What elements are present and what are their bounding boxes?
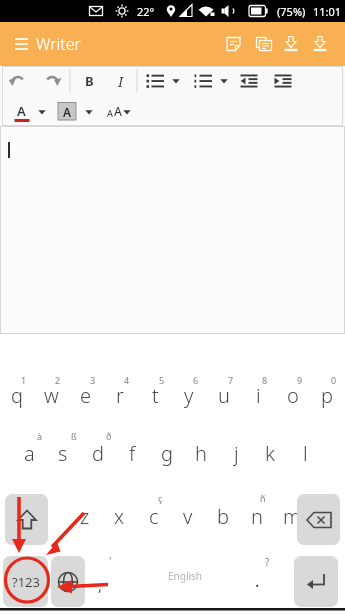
staticText: 11:01 [313, 4, 342, 19]
staticText: l [303, 440, 308, 467]
staticText: k [265, 440, 275, 467]
staticText: A [63, 104, 72, 120]
button[interactable]: q [0, 375, 34, 415]
staticText: t [152, 382, 159, 409]
staticText: A [107, 107, 113, 119]
button[interactable]: b [206, 496, 240, 536]
button[interactable] [269, 68, 297, 94]
staticText: à [37, 430, 43, 442]
staticText: 1 [21, 374, 27, 386]
staticText: j [234, 440, 239, 467]
button[interactable]: f [115, 433, 149, 473]
button[interactable]: j [219, 433, 253, 473]
staticText: q [11, 382, 23, 409]
button[interactable]: w [34, 375, 68, 415]
staticText: ñ [260, 492, 266, 504]
staticText: d [92, 440, 104, 467]
button[interactable] [219, 30, 247, 58]
button[interactable]: c [137, 496, 171, 536]
button[interactable]: m [275, 496, 309, 536]
staticText: z [80, 503, 90, 530]
staticText: (75%) [277, 4, 306, 19]
staticText: B [85, 72, 94, 90]
staticText: h [195, 440, 207, 467]
button[interactable]: y [172, 375, 206, 415]
staticText: 8 [262, 374, 268, 386]
button[interactable] [146, 68, 174, 94]
button[interactable]: l [288, 433, 322, 473]
button[interactable]: p [310, 375, 344, 415]
staticText: ð [106, 430, 112, 442]
button[interactable] [294, 556, 338, 607]
staticText: . [255, 570, 260, 592]
staticText: ß [71, 430, 77, 442]
staticText: 22° [137, 4, 155, 19]
button[interactable]: s [46, 433, 80, 473]
staticText: 4 [124, 374, 130, 386]
button[interactable]: e [69, 375, 103, 415]
staticText: I [118, 72, 124, 91]
button[interactable] [56, 98, 92, 124]
button[interactable] [51, 556, 85, 607]
button[interactable] [8, 34, 36, 54]
button[interactable] [277, 30, 305, 58]
staticText: u [218, 382, 230, 409]
button[interactable] [4, 68, 32, 94]
staticText: w [44, 382, 59, 409]
staticText: f [129, 440, 136, 467]
button[interactable]: u [207, 375, 241, 415]
button[interactable] [5, 494, 48, 545]
staticText: English [168, 569, 203, 583]
staticText: , [98, 575, 103, 595]
button[interactable]: t [138, 375, 172, 415]
button[interactable] [194, 68, 222, 94]
button[interactable]: ?123 [3, 556, 48, 607]
staticText: x [114, 503, 125, 530]
button[interactable]: v [171, 496, 205, 536]
button[interactable]: . [249, 570, 265, 592]
staticText: m [283, 503, 301, 530]
button[interactable]: d [81, 433, 115, 473]
button[interactable]: a [12, 433, 46, 473]
button[interactable] [75, 68, 103, 94]
button[interactable]: n [240, 496, 274, 536]
staticText: 3 [90, 374, 96, 386]
button[interactable]: i [241, 375, 275, 415]
staticText: A [17, 102, 26, 120]
staticText: c [149, 503, 159, 530]
button[interactable] [306, 30, 334, 58]
button[interactable] [90, 556, 280, 607]
staticText: o [287, 382, 299, 409]
button[interactable] [38, 68, 66, 94]
staticText: s [58, 440, 68, 467]
staticText: n [251, 503, 263, 530]
staticText: i [256, 382, 261, 409]
staticText: y [184, 382, 194, 409]
button[interactable]: g [150, 433, 184, 473]
button[interactable] [235, 68, 263, 94]
staticText: e [80, 382, 92, 409]
button[interactable]: r [103, 375, 137, 415]
button[interactable]: x [102, 496, 136, 536]
staticText: 5 [159, 374, 165, 386]
staticText: r [116, 382, 124, 409]
button[interactable]: h [184, 433, 218, 473]
staticText: Writer [36, 33, 81, 55]
button[interactable]: k [253, 433, 287, 473]
staticText: a [24, 440, 35, 467]
button[interactable]: o [276, 375, 310, 415]
button[interactable] [100, 98, 136, 124]
button[interactable]: z [68, 496, 102, 536]
button[interactable] [107, 68, 135, 94]
staticText: ' [109, 553, 112, 568]
button[interactable] [297, 494, 340, 545]
button[interactable] [10, 98, 46, 124]
staticText: ? [265, 555, 270, 569]
staticText: ç [158, 492, 163, 504]
button[interactable]: , [92, 574, 108, 596]
button[interactable] [248, 30, 276, 58]
staticText: p [321, 382, 333, 409]
staticText: 0 [331, 374, 337, 386]
staticText: 9 [297, 374, 303, 386]
staticText: v [183, 503, 193, 530]
